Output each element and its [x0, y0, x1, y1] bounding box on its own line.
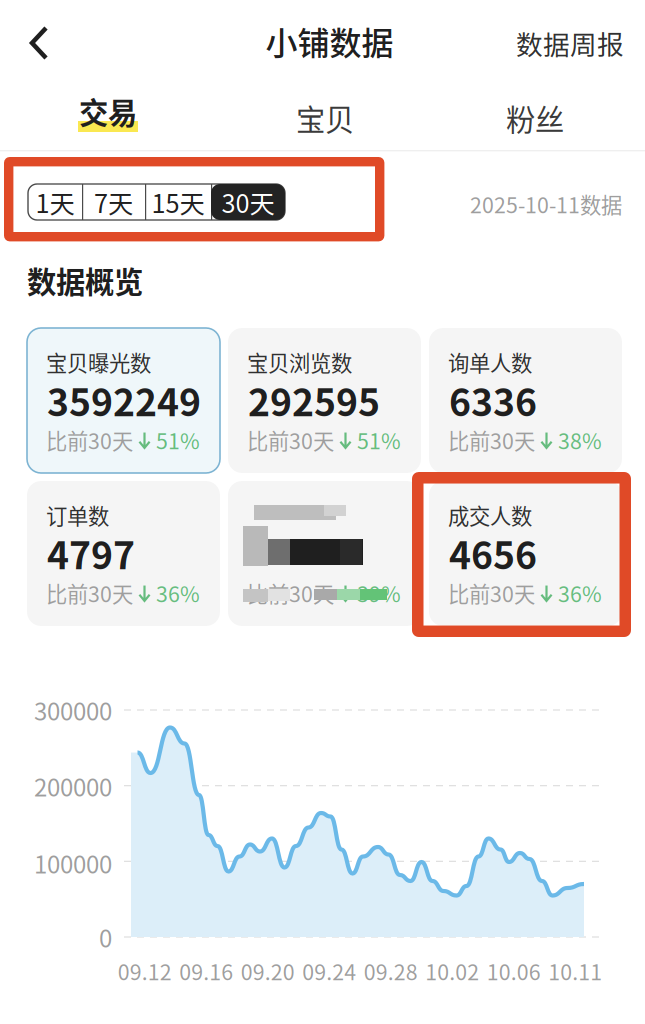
staticText: 39% [357, 578, 401, 608]
button[interactable]: 30天 [211, 184, 285, 220]
staticText: 30天 [221, 184, 274, 220]
staticText: 数据周报 [516, 24, 624, 62]
staticText: 36% [558, 578, 602, 608]
staticText: 比前30天 [247, 425, 334, 455]
staticText: 200000 [34, 769, 112, 803]
staticText: 51% [357, 425, 401, 455]
staticText: 比前30天 [448, 578, 535, 608]
staticText: 09.28 [364, 956, 418, 986]
staticText: 宝贝曝光数 [46, 347, 151, 377]
staticText: 10.11 [548, 956, 602, 986]
staticText: 询单人数 [448, 347, 532, 377]
button[interactable]: 粉丝 [495, 93, 575, 143]
staticText: 51% [156, 425, 200, 455]
staticText: 09.20 [241, 956, 295, 986]
staticText: 订单数 [46, 500, 109, 530]
staticText: 成交人数 [448, 500, 532, 530]
staticText: 10.02 [425, 956, 479, 986]
staticText: 4656 [449, 526, 537, 580]
button[interactable]: 7天 [82, 184, 145, 220]
staticText: 09.16 [179, 956, 233, 986]
staticText: 比前30天 [46, 425, 133, 455]
staticText: 比前30天 [46, 578, 133, 608]
button[interactable]: 1天 [28, 184, 82, 220]
staticText: 小铺数据 [265, 18, 393, 64]
staticText: 2025-10-11数据 [470, 189, 622, 219]
staticText: 数据概览 [27, 259, 143, 301]
staticText: 292595 [248, 373, 380, 427]
staticText: 100000 [34, 846, 112, 880]
staticText: 1天 [35, 184, 74, 220]
staticText: 4797 [47, 526, 135, 580]
staticText: 10.06 [487, 956, 541, 986]
staticText: 38% [558, 425, 602, 455]
staticText: 36% [156, 578, 200, 608]
staticText: 比前30天 [448, 425, 535, 455]
button[interactable]: 交易 [78, 92, 158, 142]
staticText: 09.12 [118, 956, 172, 986]
staticText: 宝贝 [296, 97, 354, 139]
staticText: 7天 [94, 184, 133, 220]
staticText: 0 [99, 920, 112, 954]
staticText: 交易 [79, 90, 137, 132]
button[interactable]: 数据周报 [500, 17, 640, 69]
button[interactable]: 15天 [145, 184, 211, 220]
staticText: 6336 [449, 373, 537, 427]
staticText: 3592249 [47, 373, 201, 427]
staticText: 09.24 [302, 956, 356, 986]
staticText: 300000 [34, 693, 112, 727]
staticText: 15天 [151, 184, 204, 220]
staticText: 粉丝 [506, 97, 564, 139]
staticText: 宝贝浏览数 [247, 347, 352, 377]
staticText: 比前30天 [247, 578, 334, 608]
button[interactable]: 宝贝 [285, 93, 365, 143]
button[interactable]: 返回 [11, 14, 69, 72]
